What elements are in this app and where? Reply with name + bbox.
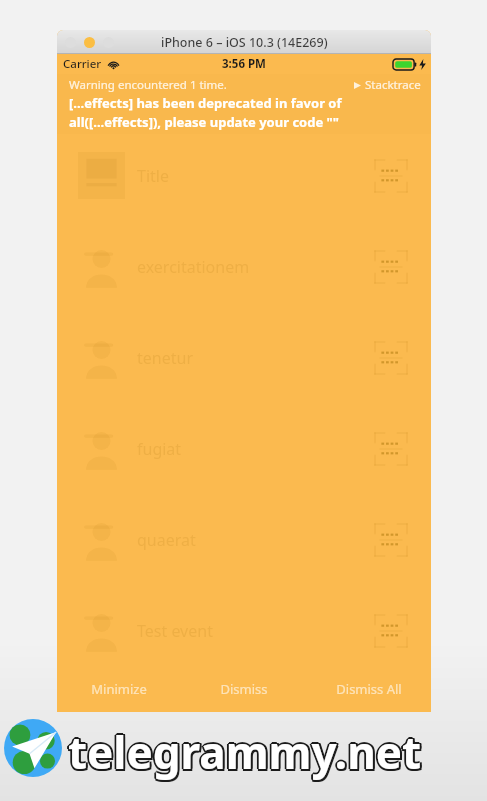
staticText: Dismiss All xyxy=(336,680,402,698)
button[interactable]: Scan code xyxy=(371,338,411,378)
staticText: [...effects] has been deprecated in favo… xyxy=(69,94,342,112)
button[interactable]: Title xyxy=(57,152,431,199)
staticText: Warning encountered 1 time. xyxy=(69,77,227,93)
staticText: all([...effects]), please update your co… xyxy=(69,113,340,131)
staticText: Title xyxy=(137,165,169,187)
staticText: telegrammy.net xyxy=(66,722,420,782)
button[interactable]: Scan code xyxy=(371,520,411,560)
staticText: Minimize xyxy=(91,680,147,698)
staticText: iPhone 6 – iOS 10.3 (14E269) xyxy=(161,34,328,51)
staticText: Dismiss xyxy=(220,680,268,698)
staticText: quaerat xyxy=(137,529,196,551)
staticText: exercitationem xyxy=(137,256,250,278)
staticText: 3:56 PM xyxy=(222,56,266,72)
button[interactable]: Scan code xyxy=(371,611,411,651)
staticText: Carrier xyxy=(63,56,102,72)
staticText: telegrammy.net xyxy=(68,722,422,782)
staticText: telegrammy.net xyxy=(70,722,424,782)
staticText: telegrammy.net xyxy=(67,721,421,781)
button[interactable]: Minimize xyxy=(57,666,181,712)
button[interactable]: Scan code xyxy=(371,156,411,196)
staticText: telegrammy.net xyxy=(70,724,424,784)
staticText: Test event xyxy=(137,620,213,642)
staticText: telegrammy.net xyxy=(70,721,424,781)
button[interactable]: Minimize window xyxy=(84,37,95,48)
button[interactable]: Scan code xyxy=(371,247,411,287)
button[interactable]: Scan code xyxy=(371,429,411,469)
staticText: tenetur xyxy=(137,347,193,369)
staticText: telegrammy.net xyxy=(67,724,421,784)
staticText: telegrammy.net xyxy=(68,720,422,780)
staticText: telegrammy.net xyxy=(68,724,422,784)
staticText: fugiat xyxy=(137,438,182,460)
button[interactable]: Dismiss xyxy=(181,666,306,712)
button[interactable]: Show stacktrace xyxy=(354,77,421,93)
button[interactable]: Dismiss All xyxy=(306,666,431,712)
button[interactable]: Warning encountered 1 time. xyxy=(57,74,431,134)
staticText: Stacktrace xyxy=(365,77,421,93)
